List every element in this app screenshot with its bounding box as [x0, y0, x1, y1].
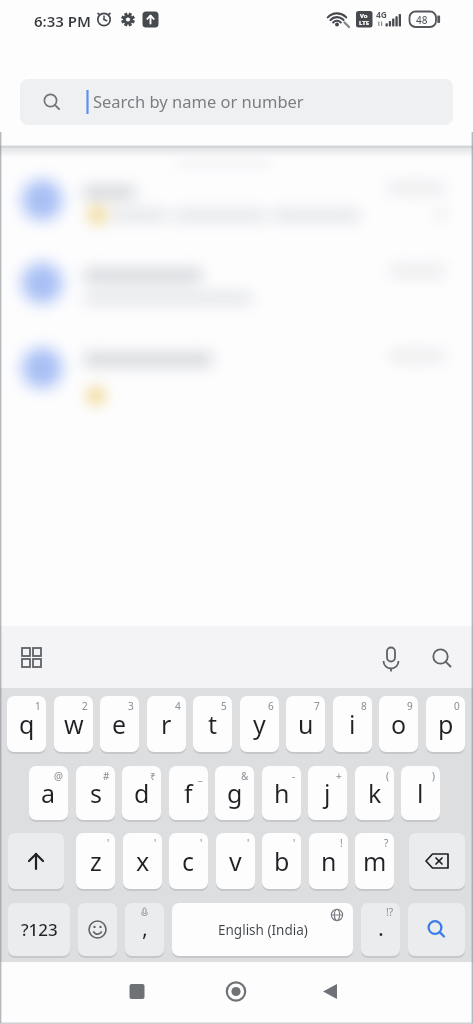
staticText: y: [253, 707, 266, 741]
button[interactable]: j: [308, 766, 347, 820]
button[interactable]: [308, 970, 352, 1014]
button[interactable]: e: [100, 696, 139, 752]
staticText: ': [107, 836, 110, 850]
button[interactable]: u: [286, 696, 325, 752]
staticText: ,: [142, 912, 148, 942]
button[interactable]: k: [355, 766, 394, 820]
button[interactable]: [214, 970, 258, 1014]
button[interactable]: [0, 246, 473, 332]
staticText: j: [324, 776, 331, 810]
button[interactable]: [78, 903, 117, 956]
button[interactable]: z: [76, 833, 115, 889]
button[interactable]: n: [309, 833, 348, 889]
staticText: -: [292, 769, 296, 783]
staticText: ₹: [150, 769, 156, 783]
button[interactable]: [115, 970, 159, 1014]
button[interactable]: y: [240, 696, 279, 752]
button[interactable]: l: [401, 766, 440, 820]
staticText: 3: [128, 699, 134, 713]
staticText: _: [198, 769, 203, 783]
staticText: (: [386, 769, 389, 783]
button[interactable]: v: [216, 833, 255, 889]
staticText: f: [184, 776, 193, 810]
staticText: 7: [314, 699, 320, 713]
button[interactable]: w: [54, 696, 93, 752]
button[interactable]: [0, 160, 473, 246]
staticText: ': [247, 836, 250, 850]
staticText: b: [274, 844, 290, 878]
staticText: h: [274, 776, 290, 810]
staticText: o: [391, 707, 407, 741]
staticText: Vo: [360, 12, 368, 20]
staticText: r: [161, 707, 172, 741]
staticText: c: [182, 844, 195, 878]
staticText: m: [363, 844, 387, 878]
button[interactable]: [12, 644, 52, 674]
button[interactable]: [0, 332, 473, 418]
button[interactable]: o: [379, 696, 418, 752]
staticText: !?: [386, 905, 394, 919]
button[interactable]: x: [123, 833, 162, 889]
button[interactable]: r: [147, 696, 186, 752]
staticText: 4G: [376, 9, 388, 21]
button[interactable]: m: [355, 833, 394, 889]
staticText: 2: [82, 699, 88, 713]
button[interactable]: a: [29, 766, 68, 820]
staticText: d: [134, 776, 150, 810]
button[interactable]: Search by name or number: [20, 79, 453, 125]
staticText: ': [293, 836, 296, 850]
button[interactable]: b: [262, 833, 301, 889]
button[interactable]: .: [361, 903, 400, 956]
button[interactable]: ?123: [8, 903, 70, 956]
staticText: ': [200, 836, 203, 850]
button[interactable]: [424, 642, 460, 676]
button[interactable]: f: [169, 766, 208, 820]
staticText: u: [298, 707, 314, 741]
staticText: l: [417, 776, 424, 810]
staticText: !: [340, 836, 343, 850]
staticText: e: [112, 707, 127, 741]
staticText: .: [378, 912, 384, 942]
button[interactable]: i: [333, 696, 372, 752]
staticText: 5: [221, 699, 227, 713]
button[interactable]: t: [193, 696, 232, 752]
staticText: q: [19, 707, 35, 741]
staticText: LTE: [359, 19, 370, 27]
button[interactable]: q: [7, 696, 46, 752]
staticText: Search by name or number: [93, 90, 304, 112]
staticText: g: [227, 776, 243, 810]
button[interactable]: [8, 833, 64, 889]
staticText: t: [208, 707, 218, 741]
staticText: 9: [407, 699, 413, 713]
staticText: k: [368, 776, 382, 810]
staticText: +: [336, 769, 342, 783]
button[interactable]: [409, 833, 465, 889]
staticText: ': [154, 836, 157, 850]
button[interactable]: [373, 642, 409, 676]
staticText: English (India): [218, 921, 308, 939]
staticText: 1: [35, 699, 41, 713]
button[interactable]: d: [122, 766, 161, 820]
staticText: @: [54, 769, 63, 783]
button[interactable]: g: [215, 766, 254, 820]
button[interactable]: [408, 903, 465, 956]
staticText: i: [349, 707, 356, 741]
button[interactable]: s: [76, 766, 115, 820]
button[interactable]: h: [262, 766, 301, 820]
staticText: 8: [361, 699, 367, 713]
button[interactable]: ,: [125, 903, 164, 956]
staticText: a: [41, 776, 56, 810]
button[interactable]: c: [169, 833, 208, 889]
staticText: ?: [384, 836, 389, 850]
button[interactable]: p: [426, 696, 465, 752]
staticText: x: [136, 844, 150, 878]
staticText: #: [103, 769, 110, 783]
staticText: 4: [175, 699, 181, 713]
staticText: ?123: [21, 918, 58, 941]
staticText: 48: [416, 13, 428, 27]
staticText: ): [432, 769, 435, 783]
staticText: w: [64, 707, 84, 741]
staticText: z: [90, 844, 102, 878]
button[interactable]: English (India): [172, 903, 353, 956]
staticText: p: [438, 707, 454, 741]
